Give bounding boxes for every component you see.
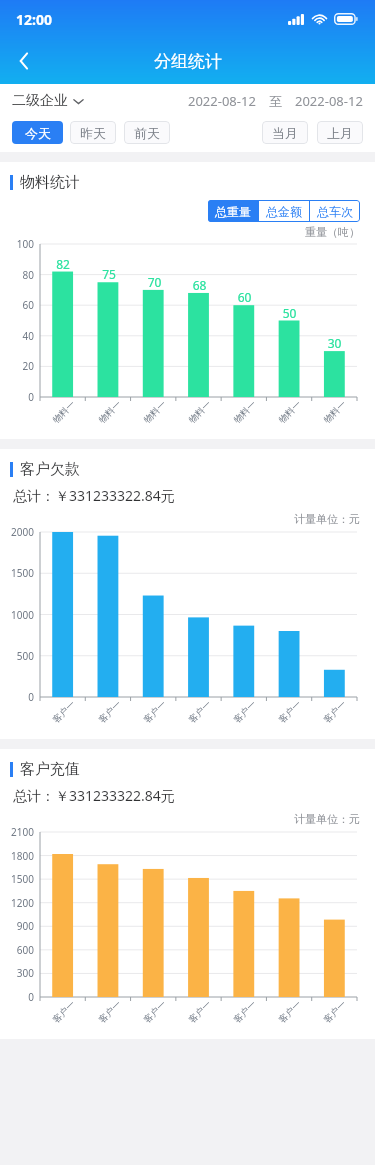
staticText: 二级企业 — [12, 92, 68, 110]
staticText: 总车次 — [317, 204, 353, 219]
staticText: 60 — [0, 298, 34, 312]
staticText: 上月 — [327, 125, 353, 141]
staticText: 12:00 — [16, 10, 52, 29]
staticText: 50 — [267, 305, 312, 321]
staticText: 物料统计 — [20, 173, 80, 192]
staticText: 客户一 — [96, 998, 123, 1025]
staticText: 重量（吨） — [305, 225, 360, 239]
staticText: 客户一 — [50, 998, 77, 1025]
staticText: 70 — [132, 274, 177, 290]
staticText: 82 — [40, 256, 86, 272]
staticText: 40 — [0, 329, 34, 343]
button[interactable]: 二级企业 — [12, 92, 84, 110]
staticText: 客户一 — [276, 998, 303, 1025]
staticText: 至 — [269, 93, 282, 109]
staticText: 客户一 — [186, 698, 213, 725]
staticText: 客户一 — [231, 998, 258, 1025]
staticText: 2100 — [0, 825, 34, 839]
staticText: 计量单位：元 — [294, 512, 360, 526]
staticText: 1800 — [0, 849, 34, 863]
staticText: 当月 — [272, 125, 298, 141]
staticText: 68 — [177, 277, 222, 293]
staticText: 物料一 — [141, 398, 168, 425]
staticText: 前天 — [134, 125, 160, 141]
button[interactable]: 上月 — [317, 121, 363, 144]
staticText: 0 — [0, 690, 34, 704]
staticText: 30 — [312, 335, 357, 351]
staticText: 0 — [0, 390, 34, 404]
button[interactable]: 当月 — [262, 121, 308, 144]
staticText: 1200 — [0, 896, 34, 910]
staticText: 100 — [0, 237, 34, 251]
staticText: 80 — [0, 268, 34, 282]
staticText: 客户一 — [141, 998, 168, 1025]
staticText: 客户欠款 — [20, 460, 80, 479]
staticText: 0 — [0, 990, 34, 1004]
staticText: 20 — [0, 359, 34, 373]
staticText: 300 — [0, 966, 34, 980]
staticText: 今天 — [25, 125, 51, 141]
staticText: 客户一 — [276, 698, 303, 725]
staticText: 总重量 — [215, 204, 251, 219]
staticText: 客户一 — [231, 698, 258, 725]
staticText: 物料一 — [96, 398, 123, 425]
button[interactable]: 前天 — [124, 121, 170, 144]
staticText: 总金额 — [266, 204, 302, 219]
staticText: 物料一 — [50, 398, 77, 425]
staticText: 总计：￥331233322.84元 — [13, 786, 175, 805]
staticText: 物料一 — [231, 398, 258, 425]
staticText: 客户一 — [50, 698, 77, 725]
button[interactable]: 总车次 — [310, 200, 360, 222]
staticText: 客户一 — [321, 998, 348, 1025]
staticText: 分组统计 — [154, 51, 222, 72]
staticText: 75 — [86, 266, 132, 282]
staticText: 1000 — [0, 608, 34, 622]
button[interactable]: 2022-08-12 — [295, 92, 363, 110]
staticText: 60 — [222, 289, 267, 305]
staticText: 物料一 — [276, 398, 303, 425]
button[interactable]: 2022-08-12 — [188, 92, 256, 110]
button[interactable]: 总金额 — [259, 200, 309, 222]
button[interactable]: 今天 — [12, 121, 63, 144]
staticText: 900 — [0, 919, 34, 933]
staticText: 昨天 — [80, 125, 106, 141]
staticText: 1500 — [0, 872, 34, 886]
staticText: 计量单位：元 — [294, 812, 360, 826]
staticText: 客户一 — [321, 698, 348, 725]
button[interactable]: 总重量 — [208, 200, 258, 222]
staticText: 总计：￥331233322.84元 — [13, 486, 175, 505]
button[interactable]: Back — [4, 41, 44, 81]
staticText: 客户一 — [96, 698, 123, 725]
staticText: 2000 — [0, 525, 34, 539]
staticText: 600 — [0, 943, 34, 957]
staticText: 500 — [0, 649, 34, 663]
button[interactable]: 昨天 — [70, 121, 116, 144]
staticText: 物料一 — [321, 398, 348, 425]
staticText: 客户充值 — [20, 760, 80, 779]
staticText: 客户一 — [141, 698, 168, 725]
staticText: 物料一 — [186, 398, 213, 425]
staticText: 客户一 — [186, 998, 213, 1025]
staticText: 1500 — [0, 566, 34, 580]
